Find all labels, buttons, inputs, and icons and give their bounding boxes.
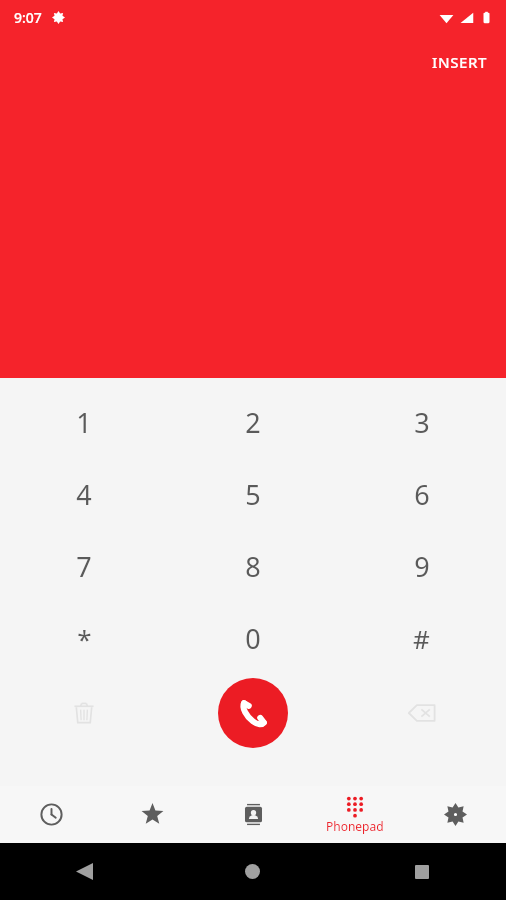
staticText: 9 [414, 548, 430, 585]
staticText: 7 [76, 548, 92, 585]
button[interactable]: 2 [168, 386, 337, 458]
button[interactable]: Contacts [203, 786, 304, 843]
staticText: INSERT [432, 52, 488, 72]
button[interactable]: 9 [337, 530, 506, 602]
staticText: # [413, 621, 430, 656]
button[interactable]: Recents [0, 786, 102, 843]
button[interactable]: 8 [168, 530, 337, 602]
staticText: 3 [414, 404, 430, 441]
button[interactable]: Favourites [102, 786, 203, 843]
button[interactable]: Call [218, 678, 288, 748]
button[interactable]: * [0, 602, 168, 674]
button[interactable]: INSERT [424, 46, 496, 78]
staticText: 5 [245, 476, 261, 513]
staticText: 0 [245, 620, 261, 657]
staticText: Phonepad [326, 818, 384, 834]
staticText: 9:07 [14, 8, 42, 27]
staticText: 6 [414, 476, 430, 513]
button[interactable]: 5 [168, 458, 337, 530]
staticText: 8 [245, 548, 261, 585]
button[interactable]: 0 [168, 602, 337, 674]
staticText: * [77, 621, 92, 656]
button[interactable]: Settings [405, 786, 506, 843]
button[interactable]: 4 [0, 458, 168, 530]
button[interactable]: Phonepad [304, 786, 405, 843]
staticText: 1 [76, 404, 92, 441]
staticText: 2 [245, 404, 261, 441]
button[interactable]: 3 [337, 386, 506, 458]
button[interactable]: # [337, 602, 506, 674]
button[interactable]: 6 [337, 458, 506, 530]
staticText: 4 [76, 476, 92, 513]
button[interactable]: 1 [0, 386, 168, 458]
button[interactable]: 7 [0, 530, 168, 602]
